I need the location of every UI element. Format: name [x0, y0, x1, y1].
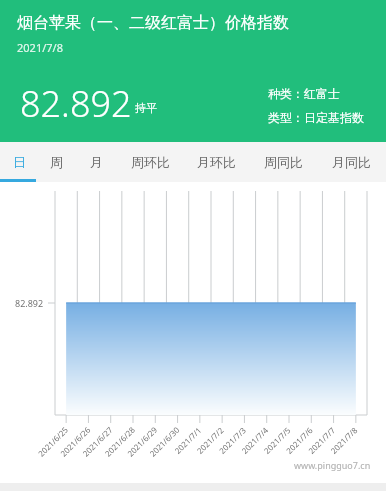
- staticText: 日: [13, 154, 26, 170]
- button[interactable]: 周同比: [250, 142, 317, 182]
- staticText: 周环比: [131, 154, 170, 170]
- staticText: 2021/7/8: [17, 40, 63, 55]
- button[interactable]: 周: [38, 142, 75, 182]
- button[interactable]: 月同比: [317, 142, 386, 182]
- button[interactable]: 月环比: [183, 142, 250, 182]
- staticText: 持平: [135, 101, 157, 115]
- staticText: 类型：日定基指数: [268, 110, 364, 125]
- staticText: 烟台苹果（一、二级红富士）价格指数: [17, 13, 289, 33]
- button[interactable]: 月: [75, 142, 117, 182]
- staticText: 种类：红富士: [268, 86, 340, 101]
- staticText: 82.892: [20, 79, 132, 128]
- staticText: 月环比: [197, 154, 236, 170]
- button[interactable]: 日: [0, 142, 38, 182]
- staticText: 月: [90, 154, 103, 170]
- button[interactable]: 周环比: [117, 142, 183, 182]
- staticText: 周: [50, 154, 63, 170]
- staticText: 月同比: [332, 154, 371, 170]
- staticText: 周同比: [264, 154, 303, 170]
